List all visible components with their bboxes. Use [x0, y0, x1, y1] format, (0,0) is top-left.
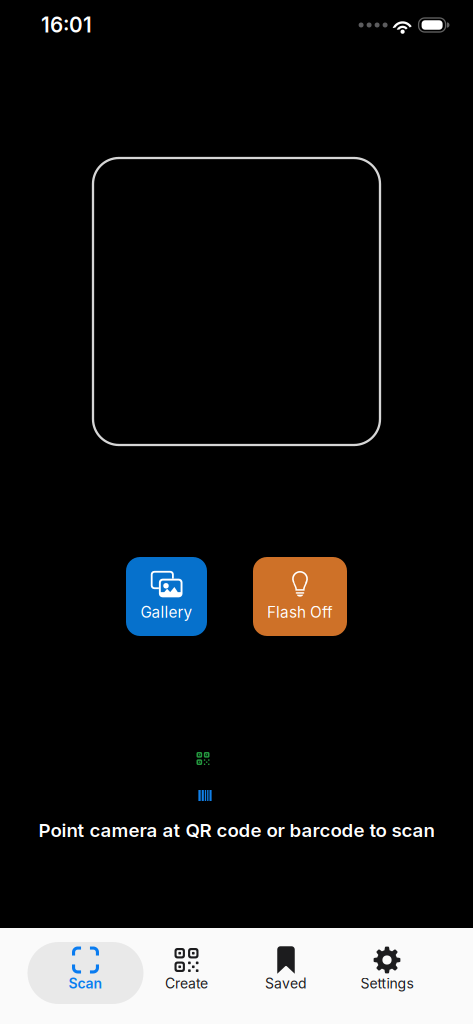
button[interactable]: Saved	[241, 942, 331, 1004]
staticText: Point camera at QR code or barcode to sc…	[38, 819, 434, 842]
button[interactable]: Flash Off	[253, 557, 347, 636]
button[interactable]: Gallery	[126, 557, 207, 636]
staticText: Saved	[265, 975, 307, 992]
staticText: Create	[165, 975, 208, 992]
staticText: Settings	[360, 975, 413, 992]
staticText: Flash Off	[267, 603, 333, 622]
button[interactable]: Scan	[27, 942, 143, 1004]
staticText: 16:01	[41, 12, 92, 37]
staticText: Scan	[68, 975, 102, 992]
button[interactable]: Settings	[342, 942, 432, 1004]
button[interactable]: Create	[141, 942, 231, 1004]
staticText: Gallery	[140, 603, 192, 622]
